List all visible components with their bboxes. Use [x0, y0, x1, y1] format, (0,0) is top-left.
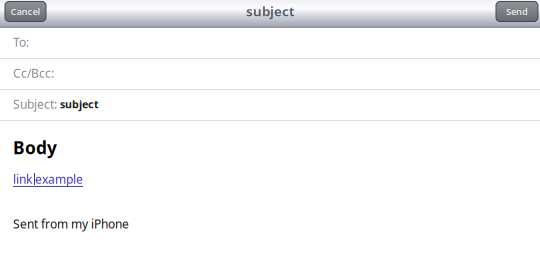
button[interactable]: Send [496, 1, 538, 21]
button[interactable]: To: [0, 28, 540, 58]
staticText: subject [60, 97, 99, 111]
staticText: Send [506, 5, 528, 18]
staticText: Cancel [10, 5, 40, 18]
staticText: Sent from my iPhone [13, 216, 129, 232]
staticText: link [13, 171, 32, 187]
button[interactable]: Cc/Bcc: [0, 59, 540, 89]
staticText: To: [13, 34, 29, 50]
staticText: example [35, 171, 83, 187]
staticText: Subject: [13, 96, 57, 112]
staticText: subject [246, 2, 294, 20]
button[interactable]: Subject: [0, 90, 540, 120]
button[interactable]: Cancel [5, 1, 46, 21]
staticText: Body [13, 136, 57, 159]
staticText: Cc/Bcc: [13, 65, 54, 81]
button[interactable]: link example [13, 171, 83, 187]
